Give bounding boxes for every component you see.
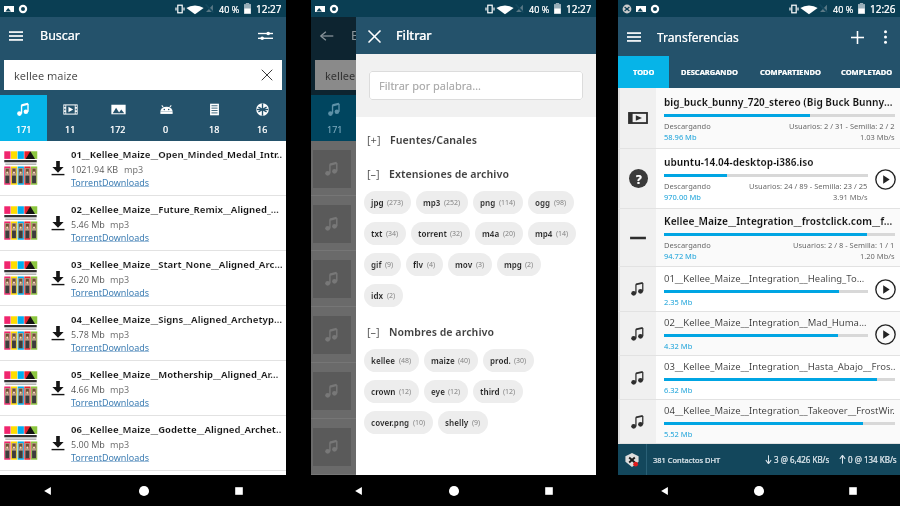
button[interactable]: Search settings <box>247 18 283 54</box>
button[interactable]: Back <box>0 475 96 506</box>
button[interactable]: Download <box>47 157 69 179</box>
button[interactable]: Download <box>47 432 69 454</box>
button[interactable]: Category tab 18 <box>190 95 238 141</box>
button[interactable]: 01__Kellee_Maize__Integration__Healing_T… <box>618 267 900 311</box>
button[interactable]: Kellee_Maize__Integration__frostclick.co… <box>618 209 900 266</box>
staticText: m4a <box>482 228 500 239</box>
button[interactable]: [+] <box>364 132 588 147</box>
staticText: Descargando <box>664 240 711 250</box>
staticText: COMPARTIENDO <box>760 67 822 77</box>
staticText: [–] <box>367 324 380 339</box>
button[interactable]: ogg <box>528 191 574 214</box>
staticText: mp3 <box>423 197 441 208</box>
button[interactable]: Download <box>0 416 286 470</box>
staticText: (48) <box>399 356 412 366</box>
staticText: 40 % <box>219 3 240 15</box>
button[interactable]: Download <box>47 267 69 289</box>
button[interactable]: Recent apps <box>191 475 286 506</box>
button[interactable]: Download <box>0 251 286 305</box>
button[interactable]: Close filter <box>356 18 392 54</box>
button[interactable]: big_buck_bunny_720_stereo (Big Buck Bunn… <box>618 88 900 148</box>
button[interactable]: Clear search <box>254 62 280 88</box>
staticText: flv <box>413 259 424 270</box>
button[interactable]: Back <box>618 475 712 506</box>
button[interactable]: flv <box>406 253 443 276</box>
button[interactable]: torrent <box>411 222 470 245</box>
button[interactable]: Download <box>47 377 69 399</box>
button[interactable]: mpg <box>497 253 541 276</box>
button[interactable]: gif <box>364 253 401 276</box>
button[interactable]: m4a <box>475 222 523 245</box>
button[interactable]: maize <box>424 349 478 372</box>
button[interactable]: prod. <box>483 349 534 372</box>
button[interactable]: txt <box>364 222 406 245</box>
button[interactable]: More options <box>872 24 898 50</box>
button[interactable]: shelly <box>438 411 488 434</box>
button[interactable]: Download <box>0 141 286 195</box>
button[interactable]: Menu <box>0 20 32 52</box>
button[interactable]: Category tab 171 <box>0 95 47 141</box>
button[interactable]: Category tab 16 <box>238 95 286 141</box>
staticText: 0 <box>163 123 169 135</box>
button[interactable]: COMPARTIENDO <box>749 56 833 88</box>
button[interactable]: jpg <box>364 191 411 214</box>
staticText: Buscar <box>40 27 81 44</box>
button[interactable]: Category tab 11 <box>47 95 94 141</box>
button[interactable]: Home <box>712 475 806 506</box>
button[interactable]: cover.png <box>364 411 433 434</box>
staticText: (114) <box>499 198 516 208</box>
button[interactable]: Download <box>47 322 69 344</box>
button[interactable]: Download <box>0 306 286 360</box>
button[interactable]: TODO <box>618 56 669 88</box>
staticText: 5.46 Mb <box>71 218 105 230</box>
button[interactable]: Download <box>47 212 69 234</box>
button[interactable]: Filtrar por palabra… <box>369 71 583 100</box>
staticText: 970.00 Mb <box>664 192 701 202</box>
button[interactable]: Add transfer <box>842 22 872 52</box>
staticText: eye <box>431 386 445 397</box>
button[interactable]: mp4 <box>528 222 576 245</box>
button[interactable]: crown <box>364 380 419 403</box>
button[interactable]: DESCARGANDO <box>669 56 749 88</box>
staticText: 40 % <box>833 3 854 15</box>
button[interactable]: kellee <box>364 349 419 372</box>
button[interactable]: Home <box>406 475 501 506</box>
button[interactable]: Category tab 0 <box>142 95 190 141</box>
button[interactable]: [–] <box>364 166 588 181</box>
staticText: TorrentDownloads <box>71 341 150 353</box>
button[interactable]: Download <box>0 196 286 250</box>
button[interactable]: Back <box>311 475 406 506</box>
button[interactable]: ? <box>618 149 900 208</box>
button[interactable]: Recent apps <box>501 475 596 506</box>
staticText: jpg <box>371 197 384 208</box>
staticText: mp4 <box>535 228 553 239</box>
button[interactable]: Category tab 172 <box>94 95 142 141</box>
staticText: 40 % <box>529 3 550 15</box>
button[interactable]: Menu <box>618 21 650 53</box>
button[interactable]: COMPLETADO <box>833 56 900 88</box>
button[interactable]: idx <box>364 284 403 307</box>
button[interactable]: eye <box>424 380 468 403</box>
button[interactable]: 04__Kellee_Maize__Integration__Takeover_… <box>618 400 900 443</box>
button[interactable]: mp3 <box>416 191 468 214</box>
button[interactable]: Download <box>0 361 286 415</box>
staticText: 172 <box>110 123 126 135</box>
staticText: ? <box>636 171 642 187</box>
button[interactable]: 03__Kellee_Maize__Integration__Hasta_Aba… <box>618 356 900 399</box>
staticText: mp3 <box>110 218 130 230</box>
button[interactable]: third <box>473 380 523 403</box>
button[interactable]: png <box>473 191 523 214</box>
staticText: [–] <box>367 166 380 181</box>
button[interactable]: Home <box>96 475 191 506</box>
button[interactable]: Recent apps <box>806 475 900 506</box>
button[interactable]: Play <box>870 164 900 194</box>
staticText: (252) <box>444 198 461 208</box>
button[interactable]: Play <box>870 319 900 349</box>
staticText: mp3 <box>110 438 130 450</box>
button[interactable]: Play <box>870 274 900 304</box>
button[interactable]: 02__Kellee_Maize__Integration__Mad_Huma… <box>618 312 900 355</box>
staticText: (3) <box>476 260 485 270</box>
button[interactable]: mov <box>448 253 492 276</box>
button[interactable]: kellee maize <box>4 60 282 90</box>
button[interactable]: [–] <box>364 324 588 339</box>
